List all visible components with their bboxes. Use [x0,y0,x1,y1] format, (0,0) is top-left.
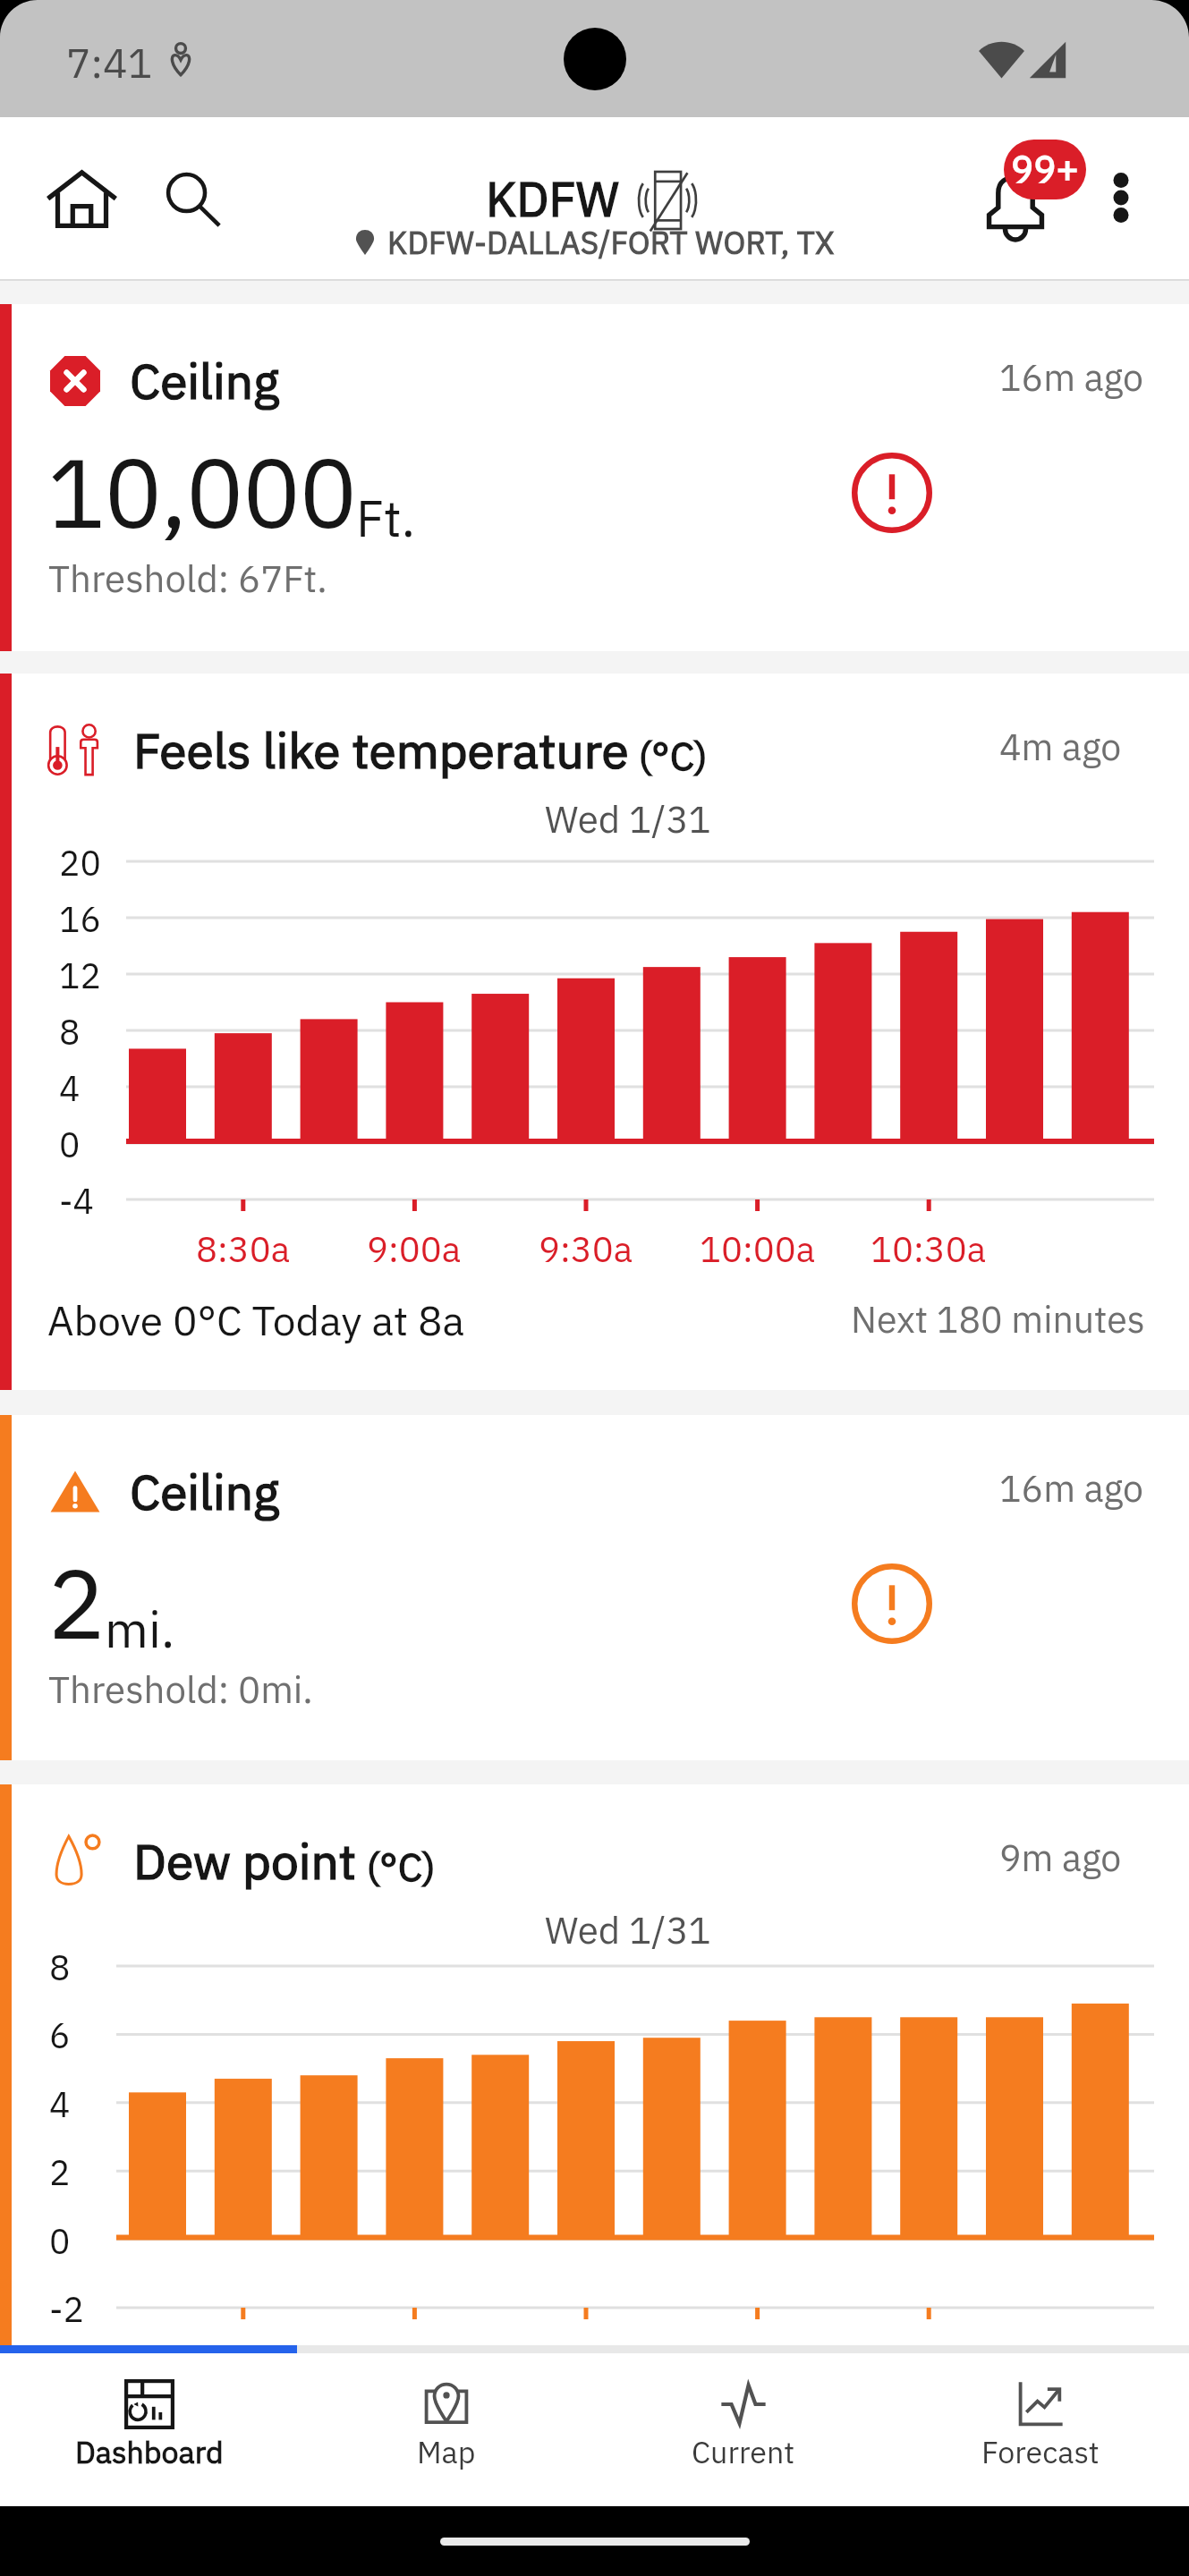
staticText: Threshold: 0mi. [48,1665,313,1714]
staticText: KDFW [486,167,619,230]
staticText: 9:30a [539,1225,633,1272]
staticText: Dashboard [75,2432,224,2471]
staticText: (°C) [629,730,708,781]
button[interactable]: Map [298,2353,595,2506]
staticText: Map [417,2432,476,2471]
button[interactable]: Current [595,2353,892,2506]
staticText: 8 [59,1009,81,1055]
staticText: 20 [59,840,101,885]
staticText: Ceiling [130,1460,280,1524]
staticText: Dew point [133,1829,357,1894]
staticText: 7:41 [66,36,153,89]
staticText: 4m ago [999,723,1122,770]
button[interactable]: Search [143,155,242,244]
staticText: Ft. [356,486,415,551]
staticText: 4 [49,2081,71,2127]
staticText: Feels like temperature [133,718,629,783]
staticText: 10,000 [47,428,356,554]
staticText: Wed 1/31 [545,1905,711,1954]
staticText: Ceiling [130,349,280,413]
staticText: Next 180 minutes [851,1295,1145,1343]
button[interactable]: Feels like temperature [0,674,1189,1390]
staticText: Threshold: 67Ft. [48,554,327,603]
button[interactable]: Home [32,155,131,244]
staticText: mi. [105,1597,175,1662]
staticText: 0 [59,1122,81,1167]
staticText: 2 [47,1539,105,1665]
button[interactable]: Dashboard [0,2353,298,2506]
staticText: 2 [49,2149,71,2195]
staticText: 9m ago [999,1834,1122,1881]
staticText: 10:00a [700,1225,816,1272]
button[interactable]: More options [1082,158,1160,237]
button[interactable]: Ceiling [0,304,1189,651]
staticText: 6 [49,2012,71,2058]
staticText: 0 [49,2218,71,2264]
staticText: Forecast [981,2432,1100,2471]
staticText: 12 [59,953,101,998]
button[interactable]: Dew point [0,1784,1189,2345]
button[interactable]: Ceiling [0,1415,1189,1760]
staticText: 16m ago [999,353,1143,401]
staticText: Current [692,2432,795,2471]
staticText: Wed 1/31 [545,794,711,843]
button[interactable]: Notifications [972,149,1100,252]
staticText: 16 [59,896,101,942]
staticText: 9:00a [367,1225,462,1272]
staticText: 10:30a [871,1225,987,1272]
staticText: 99+ [1011,144,1079,193]
staticText: Above 0°C Today at 8a [47,1293,465,1347]
staticText: -2 [49,2286,84,2332]
button[interactable]: Forecast [892,2353,1189,2506]
staticText: (°C) [357,1841,436,1892]
staticText: 8 [49,1945,71,1990]
staticText: -4 [59,1178,94,1224]
staticText: 4 [59,1065,81,1111]
staticText: 16m ago [999,1464,1143,1512]
staticText: KDFW-DALLAS/FORT WORT, TX [387,222,835,263]
staticText: 8:30a [196,1225,291,1272]
